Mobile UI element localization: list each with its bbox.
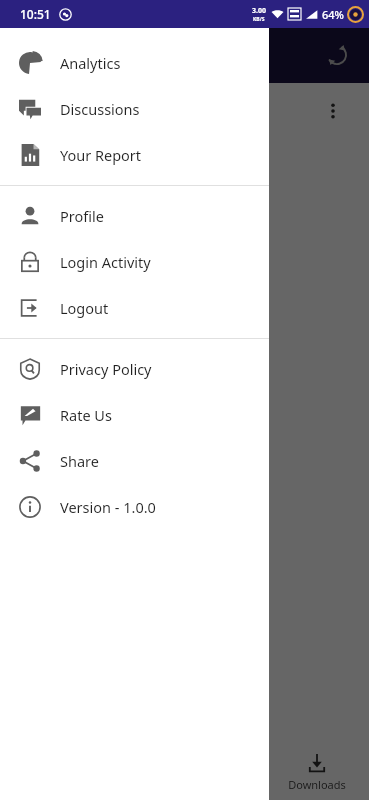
staticText: Logout	[60, 298, 109, 318]
button[interactable]: Version - 1.0.0	[0, 484, 269, 530]
staticText: Version - 1.0.0	[60, 497, 156, 517]
button[interactable]: Share	[0, 438, 269, 484]
staticText: Profile	[60, 206, 104, 226]
staticText: Discussions	[60, 99, 140, 119]
button[interactable]: Discussions	[0, 86, 269, 132]
button[interactable]: Rate Us	[0, 392, 269, 438]
staticText: 3.00	[252, 6, 266, 16]
staticText: Login Activity	[60, 252, 151, 272]
staticText: 10:51	[20, 6, 51, 22]
button[interactable]: Your Report	[0, 132, 269, 178]
staticText: Share	[60, 451, 99, 471]
staticText: 64%	[322, 7, 344, 22]
staticText: Rate Us	[60, 405, 112, 425]
staticText: Privacy Policy	[60, 359, 152, 379]
staticText: KB/S	[253, 16, 265, 23]
staticText: Analytics	[60, 53, 121, 73]
button[interactable]: Privacy Policy	[0, 346, 269, 392]
button[interactable]: Analytics	[0, 40, 269, 86]
button[interactable]: Logout	[0, 285, 269, 331]
button[interactable]: Profile	[0, 193, 269, 239]
button[interactable]: Downloads	[265, 744, 369, 800]
staticText: Your Report	[60, 145, 142, 165]
button[interactable]: Refresh	[315, 33, 359, 77]
button[interactable]: Login Activity	[0, 239, 269, 285]
staticText: Downloads	[288, 777, 346, 792]
button[interactable]: More options	[313, 91, 353, 131]
